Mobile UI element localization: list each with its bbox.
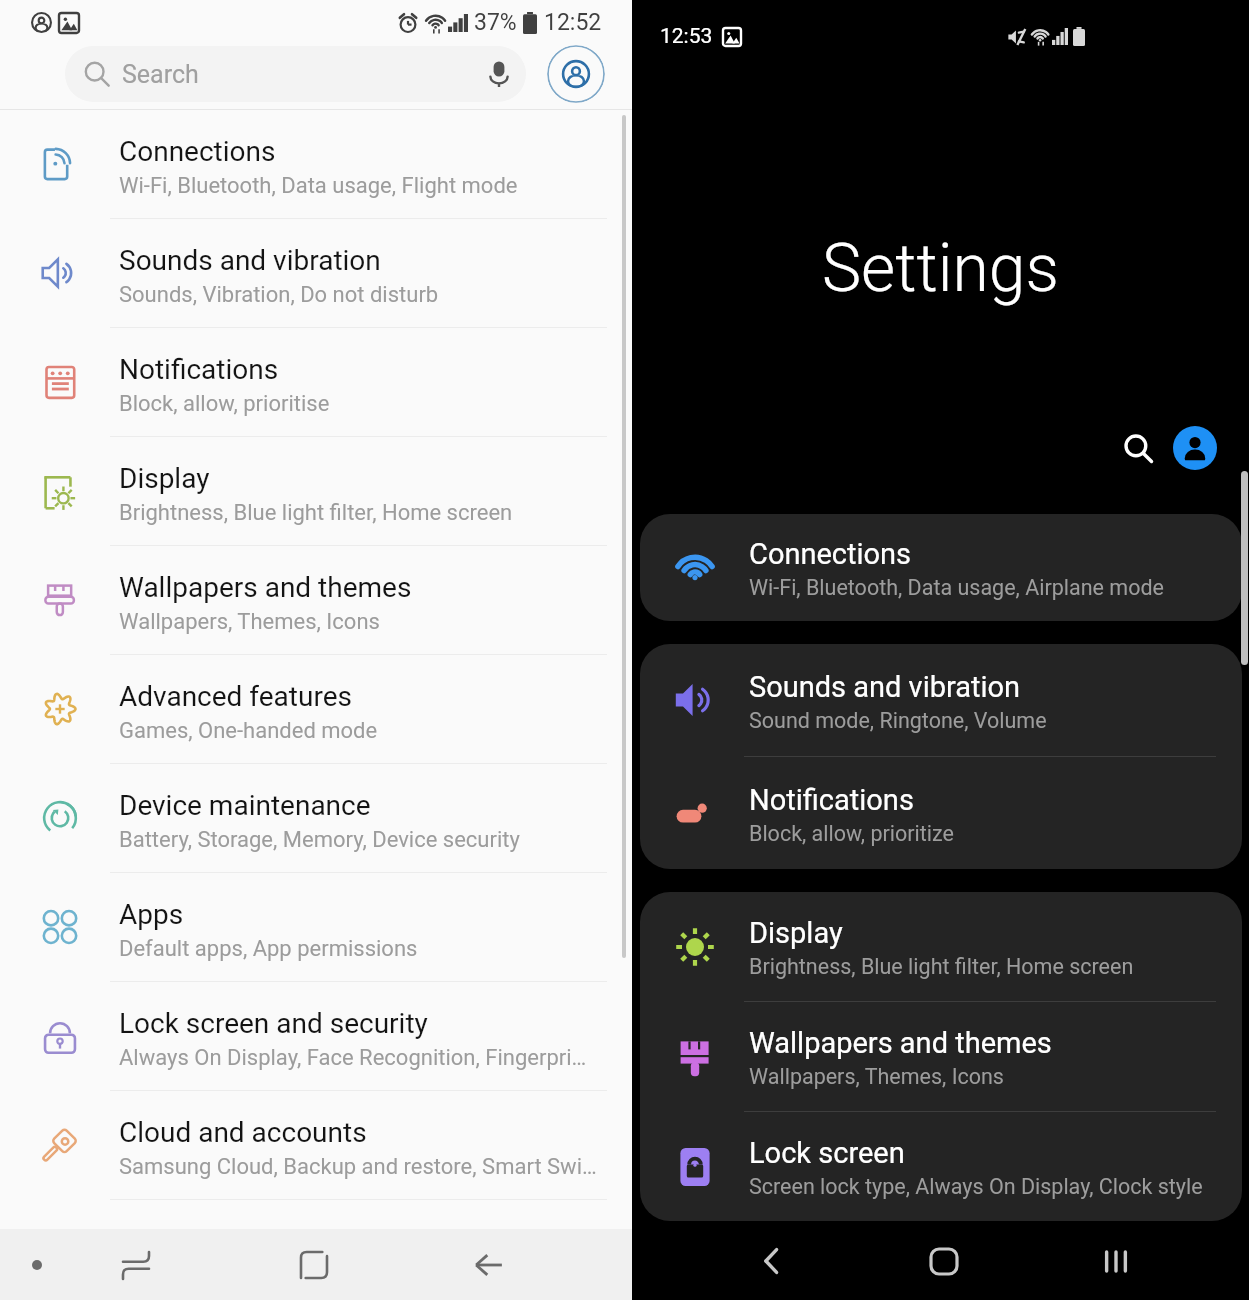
button[interactable]: Home xyxy=(921,1238,967,1284)
staticText: Default apps, App permissions xyxy=(119,936,418,962)
staticText: Apps xyxy=(119,898,184,931)
staticText: Lock screen xyxy=(749,1136,905,1170)
staticText: Always On Display, Face Recognition, Fin… xyxy=(119,1045,587,1071)
button[interactable]: Account xyxy=(1173,426,1217,470)
button[interactable]: Connections xyxy=(0,110,632,218)
staticText: Wi-Fi, Bluetooth, Data usage, Flight mod… xyxy=(119,173,518,199)
staticText: Notifications xyxy=(119,353,279,386)
staticText: Brightness, Blue light filter, Home scre… xyxy=(119,500,513,526)
staticText: Sounds and vibration xyxy=(749,670,1021,704)
staticText: Screen lock type, Always On Display, Clo… xyxy=(749,1174,1203,1199)
button[interactable]: Back xyxy=(748,1238,794,1284)
button[interactable]: Cloud and accounts xyxy=(0,1091,632,1199)
staticText: 12:53 xyxy=(660,24,713,49)
staticText: 37% xyxy=(474,9,517,36)
button[interactable]: Connections xyxy=(640,514,1242,621)
staticText: Notifications xyxy=(749,783,914,817)
staticText: Search xyxy=(122,60,199,89)
staticText: Wallpapers and themes xyxy=(749,1026,1052,1060)
staticText: Sound mode, Ringtone, Volume xyxy=(749,708,1047,733)
staticText: Connections xyxy=(749,537,912,571)
staticText: Lock screen and security xyxy=(119,1007,428,1040)
button[interactable]: Recent apps xyxy=(113,1242,159,1288)
staticText: Advanced features xyxy=(119,680,352,713)
button[interactable]: Notifications xyxy=(640,757,1242,869)
button[interactable]: Back xyxy=(466,1242,512,1288)
button[interactable]: Device maintenance xyxy=(0,764,632,872)
staticText: Sounds and vibration xyxy=(119,244,381,277)
staticText: Battery, Storage, Memory, Device securit… xyxy=(119,827,520,853)
staticText: Device maintenance xyxy=(119,789,371,822)
button[interactable]: Hide keyboard xyxy=(14,1242,60,1288)
staticText: Block, allow, prioritise xyxy=(119,391,330,417)
staticText: Connections xyxy=(119,135,276,168)
button[interactable]: Display xyxy=(640,892,1242,1001)
button[interactable]: Search xyxy=(1114,424,1162,472)
staticText: Wallpapers, Themes, Icons xyxy=(119,609,380,635)
staticText: Wallpapers, Themes, Icons xyxy=(749,1064,1004,1089)
button[interactable]: Sounds and vibration xyxy=(0,219,632,327)
button[interactable]: Wallpapers and themes xyxy=(0,546,632,654)
button[interactable]: Lock screen and security xyxy=(0,982,632,1090)
button[interactable]: Recent apps xyxy=(1093,1238,1139,1284)
staticText: Sounds, Vibration, Do not disturb xyxy=(119,282,439,308)
button[interactable]: Display xyxy=(0,437,632,545)
button[interactable]: Notifications xyxy=(0,328,632,436)
button[interactable]: Home xyxy=(291,1242,337,1288)
staticText: Display xyxy=(749,916,843,950)
button[interactable]: Account xyxy=(547,45,605,103)
staticText: Games, One-handed mode xyxy=(119,718,378,744)
button[interactable]: Apps xyxy=(0,873,632,981)
button[interactable]: Sounds and vibration xyxy=(640,644,1242,756)
button[interactable]: Advanced features xyxy=(0,655,632,763)
staticText: Samsung Cloud, Backup and restore, Smart… xyxy=(119,1154,597,1180)
button[interactable]: Search xyxy=(65,46,526,102)
staticText: 12:52 xyxy=(544,9,602,36)
staticText: Wallpapers and themes xyxy=(119,571,412,604)
staticText: Cloud and accounts xyxy=(119,1116,367,1149)
staticText: Display xyxy=(119,462,210,495)
button[interactable]: Wallpapers and themes xyxy=(640,1002,1242,1111)
staticText: Wi-Fi, Bluetooth, Data usage, Airplane m… xyxy=(749,575,1164,600)
staticText: Block, allow, prioritize xyxy=(749,821,954,846)
staticText: Settings xyxy=(822,230,1059,307)
button[interactable]: Lock screen xyxy=(640,1112,1242,1221)
staticText: Brightness, Blue light filter, Home scre… xyxy=(749,954,1134,979)
